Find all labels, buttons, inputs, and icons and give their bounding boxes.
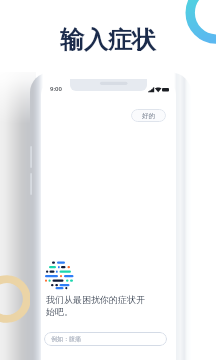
other: Status icons [148, 87, 170, 93]
button[interactable]: 例如：腹痛 [44, 332, 167, 346]
staticText: 9:00 [50, 85, 62, 93]
button[interactable]: 好的 [131, 109, 166, 122]
staticText: 我们从最困扰你的症状开始吧。 [46, 294, 152, 318]
staticText: 例如：腹痛 [51, 335, 81, 343]
staticText: 好的 [142, 112, 155, 120]
staticText: 输入症状 [60, 25, 156, 55]
